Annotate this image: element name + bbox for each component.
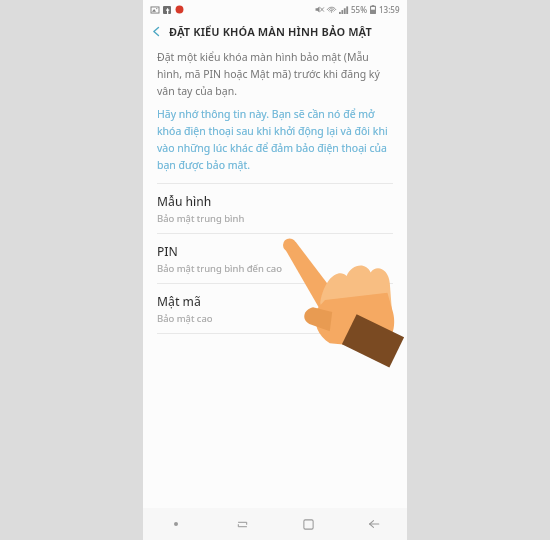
staticText: Đặt một kiểu khóa màn hình bảo mật (Mẫu … [157, 50, 393, 98]
staticText: 55% [351, 4, 367, 15]
staticText: PIN [157, 243, 178, 259]
staticText: Mẫu hình [157, 193, 212, 209]
staticText: ĐẶT KIỂU KHÓA MÀN HÌNH BẢO MẬT [169, 24, 373, 39]
button[interactable]: Back [143, 18, 169, 44]
staticText: 13:59 [379, 4, 400, 15]
button[interactable]: Recents [209, 508, 275, 540]
button[interactable]: Mẫu hình [143, 184, 407, 233]
staticText: Bảo mật cao [157, 312, 213, 325]
button[interactable]: Back [341, 508, 407, 540]
button[interactable]: PIN [143, 234, 407, 283]
staticText: Bảo mật trung bình [157, 212, 245, 225]
staticText: Bảo mật trung bình đến cao [157, 262, 282, 275]
staticText: Mật mã [157, 293, 201, 309]
button[interactable]: Mật mã [143, 284, 407, 333]
button[interactable]: Menu dot [143, 508, 209, 540]
staticText: Hãy nhớ thông tin này. Bạn sẽ cần nó để … [157, 107, 393, 172]
button[interactable]: Home [275, 508, 341, 540]
